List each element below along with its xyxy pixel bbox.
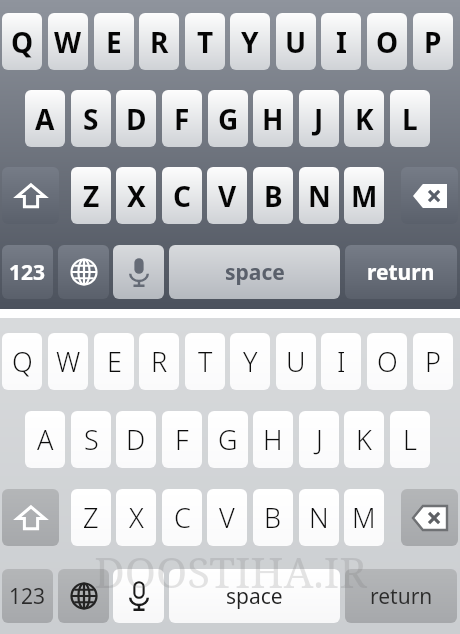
button[interactable]: R [139, 13, 179, 70]
button[interactable]: N [299, 489, 339, 546]
button[interactable]: G [208, 411, 248, 468]
button[interactable]: F [162, 411, 202, 468]
staticText: Y [243, 343, 258, 380]
button[interactable]: C [162, 489, 202, 546]
button[interactable]: U [276, 333, 316, 390]
staticText: Y [241, 23, 259, 61]
button[interactable]: Backspace [401, 167, 458, 224]
button[interactable]: Backspace [401, 489, 458, 546]
staticText: D [126, 421, 146, 458]
button[interactable]: T [185, 333, 225, 390]
button[interactable]: K [344, 411, 384, 468]
staticText: X [129, 499, 144, 536]
button[interactable]: X [116, 489, 156, 546]
button[interactable]: F [162, 90, 202, 147]
staticText: F [175, 421, 189, 458]
button[interactable]: R [139, 333, 179, 390]
button[interactable]: C [162, 167, 202, 224]
button[interactable]: 123 [2, 245, 53, 299]
button[interactable]: J [299, 90, 339, 147]
staticText: F [174, 100, 190, 138]
button[interactable]: V [207, 489, 247, 546]
button[interactable]: G [208, 90, 248, 147]
button[interactable]: O [367, 333, 407, 390]
staticText: B [264, 177, 283, 215]
button[interactable]: W [48, 13, 88, 70]
staticText: X [127, 177, 146, 215]
button[interactable]: I [321, 13, 361, 70]
button[interactable]: space [169, 245, 340, 299]
button[interactable]: V [207, 167, 247, 224]
button[interactable]: P [413, 333, 453, 390]
staticText: S [83, 100, 99, 138]
staticText: T [198, 343, 213, 380]
staticText: P [424, 23, 442, 61]
button[interactable]: Z [71, 489, 111, 546]
staticText: Q [11, 23, 34, 61]
button[interactable]: I [321, 333, 361, 390]
button[interactable]: Switch keyboard [58, 569, 109, 623]
staticText: M [351, 177, 378, 215]
button[interactable]: return [345, 245, 457, 299]
staticText: W [54, 23, 82, 61]
button[interactable]: M [344, 489, 384, 546]
button[interactable]: H [253, 90, 293, 147]
button[interactable]: L [390, 411, 430, 468]
staticText: K [355, 100, 374, 138]
button[interactable]: D [116, 411, 156, 468]
button[interactable]: Shift [2, 489, 59, 546]
button[interactable]: Q [2, 333, 42, 390]
button[interactable]: J [299, 411, 339, 468]
staticText: P [425, 343, 441, 380]
button[interactable]: Y [230, 13, 270, 70]
staticText: L [403, 421, 417, 458]
staticText: V [218, 177, 237, 215]
button[interactable]: E [94, 13, 134, 70]
button[interactable]: Dictation [113, 569, 164, 623]
button[interactable]: S [71, 90, 111, 147]
button[interactable]: Q [2, 13, 42, 70]
button[interactable]: Dictation [113, 245, 164, 299]
button[interactable]: W [48, 333, 88, 390]
button[interactable]: Shift [2, 167, 59, 224]
button[interactable]: Y [230, 333, 270, 390]
button[interactable]: B [253, 489, 293, 546]
staticText: return [367, 258, 435, 287]
button[interactable]: P [413, 13, 453, 70]
button[interactable]: S [71, 411, 111, 468]
staticText: Q [12, 343, 33, 380]
staticText: D [126, 100, 147, 138]
button[interactable]: O [367, 13, 407, 70]
button[interactable]: A [25, 90, 65, 147]
button[interactable]: B [253, 167, 293, 224]
staticText: Z [83, 177, 100, 215]
button[interactable]: space [169, 569, 340, 623]
button[interactable]: M [344, 167, 384, 224]
staticText: space [226, 582, 283, 611]
staticText: C [174, 499, 191, 536]
staticText: E [106, 23, 122, 61]
button[interactable]: X [116, 167, 156, 224]
button[interactable]: N [299, 167, 339, 224]
button[interactable]: return [345, 569, 457, 623]
staticText: C [173, 177, 191, 215]
staticText: 123 [9, 582, 46, 611]
button[interactable]: Switch keyboard [58, 245, 109, 299]
button[interactable]: D [116, 90, 156, 147]
button[interactable]: A [25, 411, 65, 468]
button[interactable]: H [253, 411, 293, 468]
button[interactable]: Z [71, 167, 111, 224]
staticText: U [286, 343, 306, 380]
staticText: O [377, 343, 398, 380]
button[interactable]: L [390, 90, 430, 147]
button[interactable]: E [94, 333, 134, 390]
staticText: I [337, 343, 346, 380]
button[interactable]: K [344, 90, 384, 147]
button[interactable]: U [276, 13, 316, 70]
button[interactable]: 123 [2, 569, 53, 623]
staticText: S [84, 421, 99, 458]
staticText: G [218, 421, 238, 458]
staticText: I [336, 23, 347, 61]
staticText: E [107, 343, 122, 380]
button[interactable]: T [185, 13, 225, 70]
